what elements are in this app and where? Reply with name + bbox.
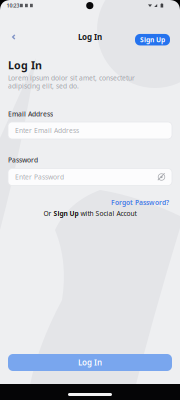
staticText: Log In <box>78 32 102 42</box>
button[interactable]: Or Sign Up with Social Accout <box>43 209 136 218</box>
staticText: Password <box>8 155 38 164</box>
button[interactable]: Back <box>8 32 18 42</box>
staticText: Enter Email Address <box>15 126 79 135</box>
button[interactable]: Log In <box>8 354 172 371</box>
staticText: Or Sign Up with Social Accout <box>43 209 136 218</box>
staticText: Sign Up <box>140 35 165 44</box>
button[interactable]: Enter Email Address <box>8 122 172 139</box>
staticText: Log In <box>78 357 102 368</box>
staticText: Enter Password <box>15 173 64 181</box>
staticText: Log In <box>8 58 42 72</box>
button[interactable]: Sign Up <box>135 34 170 45</box>
staticText: Email Address <box>8 109 53 118</box>
staticText: adipiscing elit, sed do. <box>8 81 79 90</box>
button[interactable]: Forgot Password? <box>111 198 169 207</box>
staticText: Lorem ipsum dolor sit amet, consectetur <box>8 73 135 82</box>
staticText: 10:23 <box>6 2 19 9</box>
staticText: Forgot Password? <box>111 198 169 207</box>
button[interactable]: Enter Password <box>8 168 172 185</box>
button[interactable]: Show password <box>156 172 166 181</box>
